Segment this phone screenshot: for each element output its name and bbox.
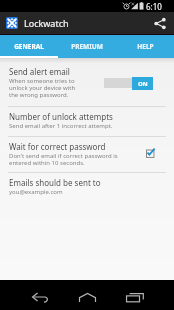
button[interactable]: Send alert email <box>0 58 174 106</box>
button[interactable]: PREMIUM <box>58 35 116 56</box>
staticText: ON <box>138 80 148 88</box>
staticText: Don't send email if correct password is <box>9 152 118 160</box>
staticText: you@example.com <box>9 188 63 196</box>
staticText: the wrong password. <box>9 91 69 99</box>
staticText: entered within 10 seconds. <box>9 159 85 167</box>
button[interactable]: HELP <box>116 35 174 56</box>
button[interactable]: Checkbox <box>146 148 158 160</box>
staticText: PREMIUM <box>71 42 103 51</box>
staticText: unlock your device with <box>9 84 76 92</box>
button[interactable]: Send alert email toggle <box>104 76 152 90</box>
staticText: Emails should be sent to <box>9 177 101 188</box>
button[interactable]: Number of unlock attempts <box>0 106 174 136</box>
staticText: 6:10 <box>146 1 162 12</box>
button[interactable]: GENERAL <box>0 35 58 56</box>
staticText: Wait for correct password <box>9 141 106 152</box>
staticText: Number of unlock attempts <box>9 111 113 122</box>
staticText: When someone tries to <box>9 77 75 85</box>
button[interactable]: Wait for correct password <box>0 136 174 172</box>
button[interactable]: Share <box>149 12 171 34</box>
button[interactable]: Home <box>68 280 106 310</box>
staticText: Send email after 1 incorrect attempt. <box>9 122 113 130</box>
staticText: HELP <box>137 42 154 51</box>
staticText: Send alert email <box>9 66 70 77</box>
button[interactable]: Recent apps <box>116 280 154 310</box>
button[interactable]: Emails should be sent to <box>0 172 174 202</box>
staticText: GENERAL <box>14 42 44 51</box>
button[interactable]: Back <box>20 280 58 310</box>
staticText: Lockwatch <box>24 17 69 29</box>
